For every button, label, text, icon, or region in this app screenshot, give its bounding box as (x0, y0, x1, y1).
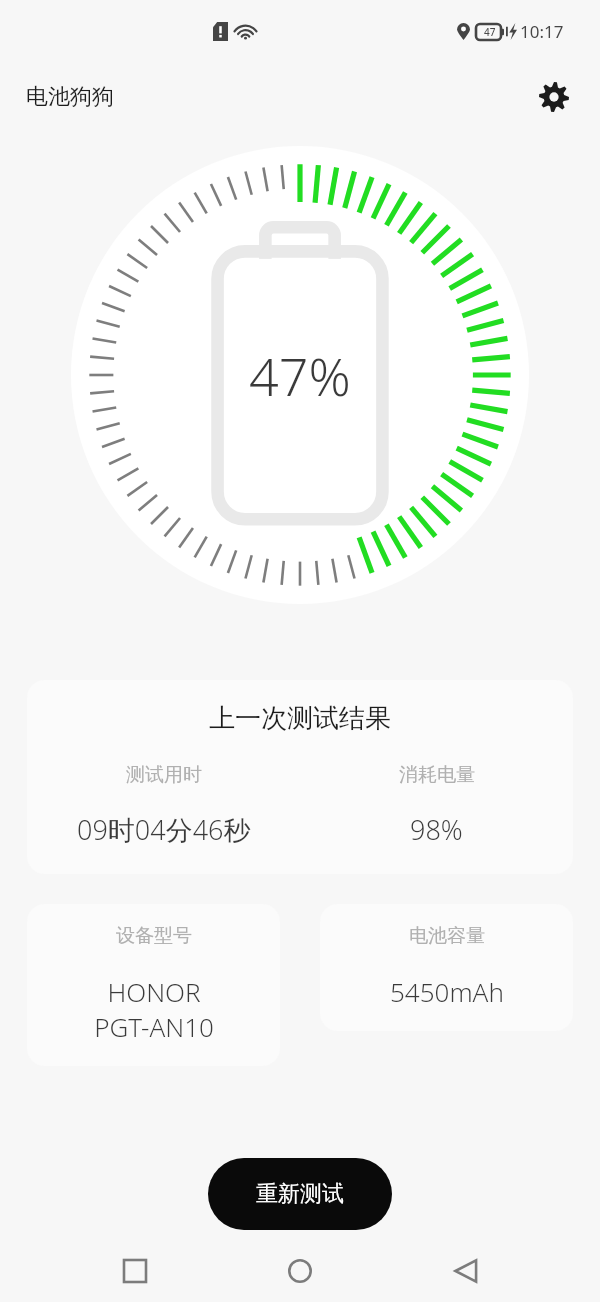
staticText: 上一次测试结果 (209, 702, 391, 735)
staticText: 重新测试 (256, 1180, 344, 1208)
button[interactable]: Recents (104, 1240, 166, 1302)
staticText: 98% (410, 811, 463, 848)
button[interactable]: 设备型号 (27, 904, 280, 1066)
staticText: 消耗电量 (399, 763, 475, 787)
button[interactable]: Back (435, 1240, 497, 1302)
staticText: 测试用时 (126, 763, 202, 787)
staticText: 09时04分46秒 (77, 811, 251, 848)
staticText: 设备型号 (116, 924, 192, 948)
staticText: 电池容量 (409, 924, 485, 948)
staticText: 47% (249, 340, 351, 411)
staticText: 电池狗狗 (26, 83, 114, 111)
button[interactable]: 重新测试 (208, 1158, 392, 1230)
staticText: 10:17 (520, 20, 564, 43)
staticText: 47 (484, 25, 496, 39)
button[interactable]: 上一次测试结果 (27, 680, 573, 874)
button[interactable]: Settings (530, 73, 578, 121)
button[interactable]: 电池容量 (320, 904, 573, 1031)
button[interactable]: Home (269, 1240, 331, 1302)
staticText: HONOR PGT-AN10 (94, 974, 214, 1044)
staticText: 5450mAh (390, 974, 504, 1009)
